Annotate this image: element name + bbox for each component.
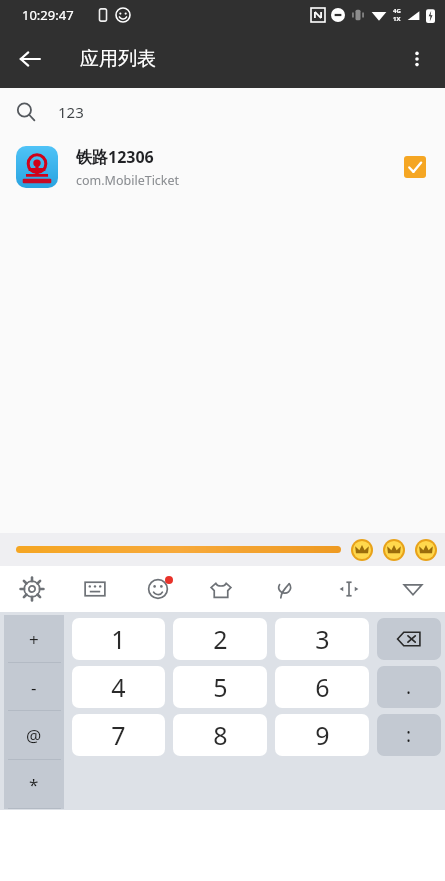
button[interactable]: Keyboard xyxy=(63,566,126,612)
staticText: 9 xyxy=(315,718,330,752)
staticText: 3 xyxy=(315,622,330,656)
staticText: : xyxy=(406,722,412,748)
staticText: @ xyxy=(26,724,42,747)
button[interactable]: Candidate xyxy=(16,546,341,553)
button[interactable]: Premium suggestion xyxy=(415,539,437,561)
staticText: 123 xyxy=(58,102,84,122)
button[interactable]: 5 xyxy=(173,666,267,708)
staticText: 2 xyxy=(213,622,228,656)
button[interactable]: 7 xyxy=(72,714,165,756)
button[interactable]: Back xyxy=(8,37,52,81)
button[interactable]: 3 xyxy=(275,618,369,660)
staticText: 5 xyxy=(213,670,228,704)
staticText: 8 xyxy=(213,718,228,752)
button[interactable]: . xyxy=(377,666,441,708)
staticText: com.MobileTicket xyxy=(76,172,180,189)
staticText: * xyxy=(29,773,39,796)
button[interactable]: : xyxy=(377,714,441,756)
button[interactable]: Cursor xyxy=(317,566,381,612)
staticText: 6 xyxy=(315,670,330,704)
button[interactable]: Emoji xyxy=(126,566,189,612)
button[interactable]: - xyxy=(4,663,64,711)
staticText: - xyxy=(31,676,37,699)
staticText: 7 xyxy=(111,718,126,752)
button[interactable]: @ xyxy=(4,711,64,760)
button[interactable]: Hide keyboard xyxy=(381,566,445,612)
staticText: 1 xyxy=(111,622,126,656)
staticText: 1X xyxy=(393,15,401,23)
button[interactable]: * xyxy=(4,760,64,809)
staticText: 4G xyxy=(393,7,401,15)
button[interactable]: 8 xyxy=(173,714,267,756)
button[interactable]: Handwriting xyxy=(253,566,317,612)
button[interactable]: Themes xyxy=(189,566,253,612)
staticText: 铁路12306 xyxy=(76,146,154,168)
button[interactable]: + xyxy=(4,615,64,663)
staticText: 4 xyxy=(111,670,126,704)
button[interactable]: 铁路12306 xyxy=(0,136,445,198)
staticText: 应用列表 xyxy=(80,47,156,71)
button[interactable]: More options xyxy=(395,37,439,81)
button[interactable]: Premium suggestion xyxy=(383,539,405,561)
button[interactable]: Selected xyxy=(393,145,437,189)
staticText: 10:29:47 xyxy=(22,6,74,24)
button[interactable]: 4 xyxy=(72,666,165,708)
button[interactable]: 2 xyxy=(173,618,267,660)
button[interactable]: Premium suggestion xyxy=(351,539,373,561)
button[interactable]: 6 xyxy=(275,666,369,708)
button[interactable]: Backspace xyxy=(377,618,441,660)
button[interactable]: 123 xyxy=(0,88,445,136)
button[interactable]: 9 xyxy=(275,714,369,756)
button[interactable]: 1 xyxy=(72,618,165,660)
staticText: + xyxy=(29,628,39,651)
staticText: . xyxy=(406,674,412,700)
button[interactable]: Settings xyxy=(0,566,63,612)
